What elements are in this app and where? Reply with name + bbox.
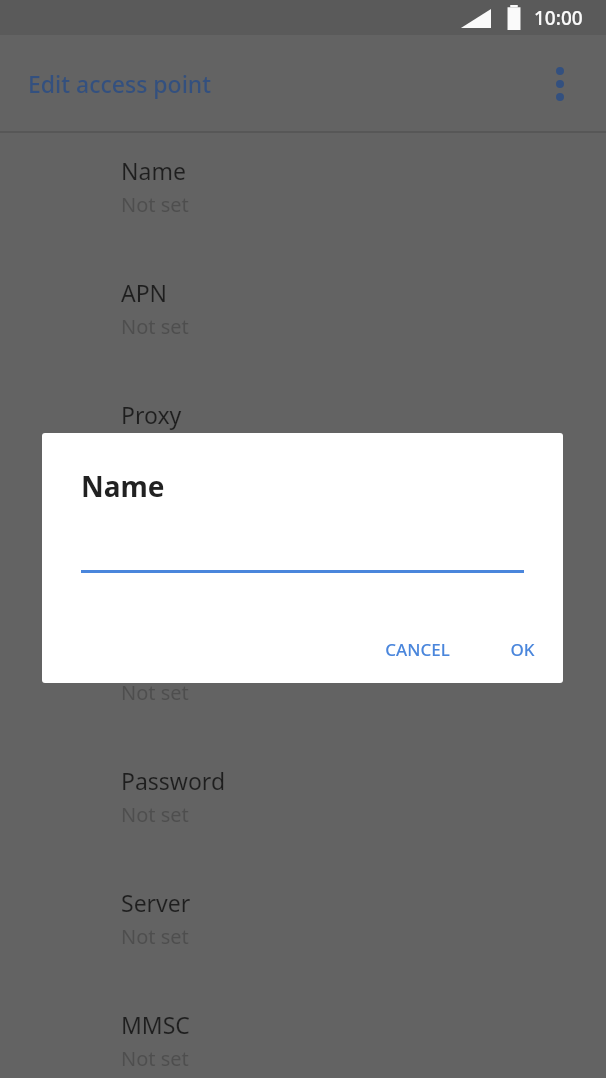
- button[interactable]: Password: [0, 743, 606, 865]
- button[interactable]: Username: [0, 621, 606, 743]
- staticText: Not set: [121, 923, 189, 950]
- staticText: Not set: [121, 1045, 189, 1072]
- staticText: Edit access point: [28, 68, 212, 99]
- staticText: Server: [121, 887, 191, 918]
- staticText: OK: [510, 638, 535, 661]
- staticText: Name: [121, 155, 186, 186]
- staticText: Name: [81, 467, 165, 505]
- button[interactable]: Server: [0, 865, 606, 987]
- button[interactable]: Name: [0, 133, 606, 255]
- staticText: Proxy: [121, 399, 182, 430]
- button[interactable]: OK: [494, 626, 551, 673]
- staticText: APN: [121, 277, 168, 308]
- staticText: MMSC: [121, 1009, 190, 1040]
- button[interactable]: MMSC: [0, 987, 606, 1078]
- staticText: CANCEL: [385, 638, 450, 661]
- button[interactable]: Port: [0, 499, 606, 621]
- staticText: 10:00: [534, 5, 583, 31]
- staticText: Not set: [121, 801, 189, 828]
- button[interactable]: More options: [528, 52, 592, 116]
- staticText: Not set: [121, 557, 189, 584]
- staticText: Not set: [121, 313, 189, 340]
- staticText: Password: [121, 765, 226, 796]
- button[interactable]: Proxy: [0, 377, 606, 499]
- button[interactable]: APN: [0, 255, 606, 377]
- staticText: Not set: [121, 679, 189, 706]
- staticText: Not set: [121, 191, 189, 218]
- button[interactable]: CANCEL: [369, 626, 466, 673]
